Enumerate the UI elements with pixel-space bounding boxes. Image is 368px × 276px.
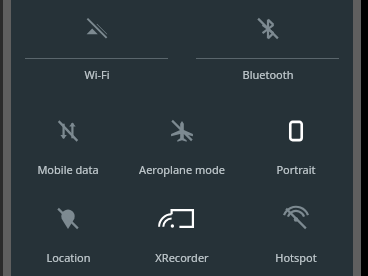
button[interactable]: Location: [11, 188, 125, 276]
staticText: Location: [46, 250, 91, 265]
button[interactable]: Hotspot: [239, 188, 353, 276]
button[interactable]: Portrait: [239, 100, 353, 188]
staticText: Bluetooth: [242, 67, 294, 82]
button[interactable]: Bluetooth: [182, 0, 353, 100]
button[interactable]: Mobile data: [11, 100, 125, 188]
button[interactable]: XRecorder: [125, 188, 239, 276]
staticText: Hotspot: [275, 250, 317, 265]
staticText: Portrait: [276, 162, 316, 177]
button[interactable]: Wi-Fi: [11, 0, 182, 100]
button[interactable]: Aeroplane mode: [125, 100, 239, 188]
staticText: Wi-Fi: [84, 67, 110, 82]
staticText: Mobile data: [37, 162, 99, 177]
staticText: Aeroplane mode: [139, 162, 225, 177]
staticText: XRecorder: [155, 250, 209, 265]
